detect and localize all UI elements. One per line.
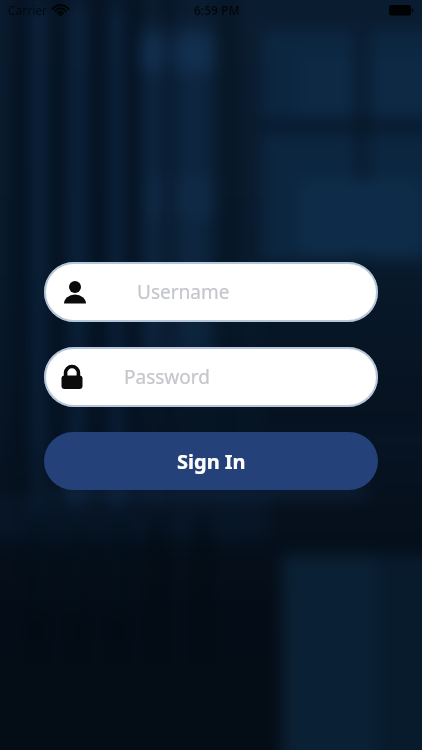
staticText: Sign In [177,448,246,475]
staticText: 6:59 PM [194,2,240,18]
staticText: Username [137,279,230,305]
button[interactable]: Password [44,347,378,407]
button[interactable]: Sign In [44,432,378,490]
staticText: Carrier [8,2,48,18]
staticText: Password [124,364,210,390]
button[interactable]: Username [44,262,378,322]
